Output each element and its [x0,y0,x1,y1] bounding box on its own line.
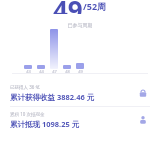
staticText: 已参与周期 [0,22,160,28]
staticText: 累计抵现 1098.25 元 [10,119,80,129]
button[interactable]: Redeem detail [136,113,150,127]
staticText: 43 [26,69,31,74]
staticText: /52周 [83,0,107,12]
staticText: 累积 10 次抵现金 [10,111,45,117]
staticText: 已获得人 36 笔 [10,84,40,90]
button[interactable]: 已获得人 36 笔 [0,80,160,106]
staticText: 47 [52,69,57,74]
staticText: 48 [65,69,70,74]
button[interactable]: Earnings detail [136,86,150,100]
staticText: 49 [78,69,83,74]
staticText: 累计获得收益 3882.46 元 [10,92,95,102]
staticText: 44 [39,69,44,74]
button[interactable]: 累积 10 次抵现金 [0,107,160,133]
staticText: 49 [53,0,83,14]
